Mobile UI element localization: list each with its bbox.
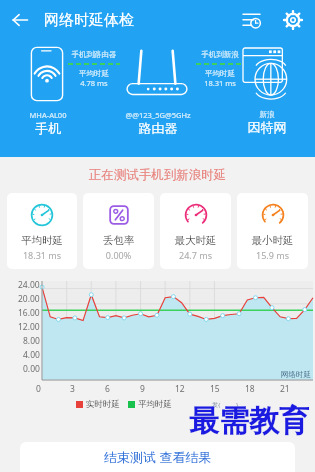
staticText: 3 — [70, 383, 75, 395]
button[interactable]: 最小时延 — [237, 193, 308, 269]
staticText: @@123_5G@5GHz — [110, 110, 206, 120]
staticText: 平均时延 — [138, 399, 172, 410]
staticText: 15 — [210, 383, 220, 395]
staticText: 发{ } — [212, 401, 239, 409]
staticText: 平均时延 — [68, 69, 120, 78]
staticText: 21 — [280, 383, 290, 395]
staticText: 9 — [140, 383, 145, 395]
staticText: 路由器 — [110, 120, 206, 136]
staticText: 平均时延 — [196, 69, 244, 78]
staticText: 15.9 ms — [237, 249, 308, 261]
staticText: 18.31 ms — [7, 249, 77, 261]
staticText: 最小时延 — [237, 234, 308, 247]
staticText: 12.00 — [18, 321, 40, 333]
staticText: 因特网 — [233, 119, 301, 135]
button[interactable]: History — [231, 0, 271, 40]
button[interactable]: Back — [0, 0, 40, 40]
staticText: 18.31 ms — [196, 78, 244, 88]
staticText: 丢包率 — [83, 234, 154, 247]
staticText: 手机到新浪 — [196, 50, 244, 59]
staticText: 0 — [36, 383, 41, 395]
staticText: 24.00 — [18, 279, 40, 291]
staticText: 6 — [105, 383, 110, 395]
staticText: 18 — [245, 383, 255, 395]
button[interactable]: Settings — [271, 0, 315, 40]
button[interactable]: 丢包率 — [83, 193, 154, 269]
staticText: 新浪 — [233, 110, 301, 119]
staticText: 0.00 — [23, 363, 40, 375]
staticText: 8.00 — [23, 335, 40, 347]
staticText: 实时时延 — [86, 399, 120, 410]
staticText: 最需教育 — [189, 402, 309, 440]
staticText: 4.78 ms — [68, 78, 120, 88]
staticText: 20.00 — [18, 293, 40, 305]
staticText: 最大时延 — [160, 234, 231, 247]
button[interactable]: 结束测试 查看结果 — [20, 442, 295, 472]
button[interactable]: 最大时延 — [160, 193, 231, 269]
staticText: 结束测试 查看结果 — [104, 448, 212, 466]
staticText: 手机 — [14, 120, 82, 136]
button[interactable]: 平均时延 — [7, 193, 77, 269]
staticText: 4.00 — [23, 349, 40, 361]
staticText: 网络时延体检 — [44, 11, 134, 30]
staticText: 24.7 ms — [160, 249, 231, 261]
staticText: 12 — [175, 383, 185, 395]
staticText: 0.00% — [83, 249, 154, 261]
staticText: 16.00 — [18, 307, 40, 319]
staticText: 正在测试手机到新浪时延 — [0, 167, 315, 183]
staticText: 平均时延 — [7, 234, 77, 247]
staticText: MHA-AL00 — [14, 110, 82, 120]
staticText: 网络时延 — [281, 370, 311, 379]
staticText: 手机到路由器 — [68, 50, 120, 59]
